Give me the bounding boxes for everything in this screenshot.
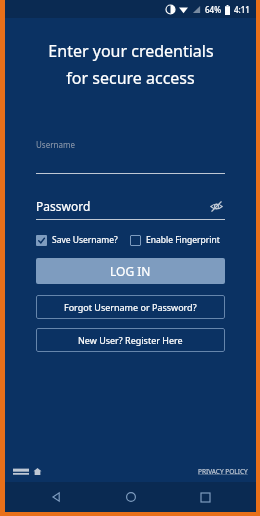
staticText: Enable Fingerprint: [146, 234, 220, 246]
staticText: LOG IN: [110, 263, 151, 279]
other: FDIC: [13, 467, 29, 476]
button[interactable]: LOG IN: [36, 258, 225, 284]
other: Equal Housing Lender: [33, 467, 42, 476]
button[interactable]: Recent apps: [194, 486, 216, 508]
staticText: 64%: [205, 4, 221, 15]
button[interactable]: Forgot Username or Password?: [36, 295, 225, 319]
button[interactable]: PRIVACY POLICY: [198, 467, 248, 476]
staticText: Forgot Username or Password?: [64, 301, 197, 313]
staticText: Enter your credentials: [48, 40, 214, 62]
staticText: Save Username?: [52, 234, 118, 246]
button[interactable]: Password: [36, 196, 225, 216]
button[interactable]: Back: [45, 486, 67, 508]
button[interactable]: Show password: [207, 197, 225, 215]
button[interactable]: Save Username?: [36, 234, 118, 246]
staticText: for secure access: [66, 67, 195, 89]
staticText: 4:11: [234, 4, 250, 15]
button[interactable]: Username: [36, 139, 225, 173]
button[interactable]: New User? Register Here: [36, 328, 225, 352]
staticText: Username: [36, 139, 75, 150]
staticText: Password: [36, 198, 91, 214]
button[interactable]: Home: [120, 486, 142, 508]
staticText: PRIVACY POLICY: [198, 467, 248, 476]
button[interactable]: Enable Fingerprint: [130, 234, 220, 246]
staticText: New User? Register Here: [78, 334, 183, 346]
